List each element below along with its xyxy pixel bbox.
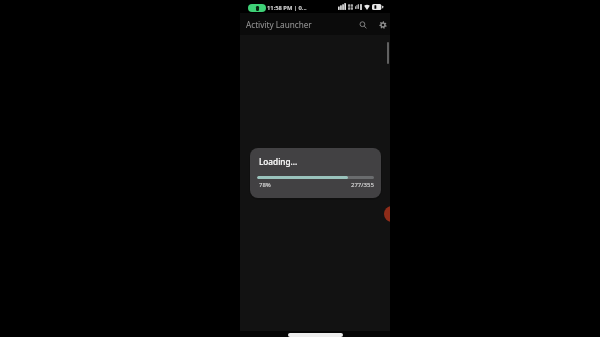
staticText: Loading... — [259, 156, 298, 167]
staticText: 277/355 — [351, 181, 374, 189]
staticText: 11:58 PM | 0... — [267, 4, 307, 12]
button[interactable]: Add shortcut — [384, 206, 390, 222]
button[interactable]: Settings — [375, 17, 390, 32]
staticText: 78% — [259, 181, 271, 189]
button[interactable]: Loading... — [250, 148, 381, 198]
button[interactable]: Search — [355, 17, 370, 32]
staticText: Activity Launcher — [246, 19, 312, 30]
